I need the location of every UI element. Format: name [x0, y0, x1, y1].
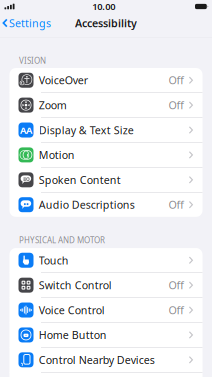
- staticText: Off: [168, 303, 183, 317]
- staticText: Audio Descriptions: [39, 198, 135, 212]
- staticText: Voice Control: [39, 303, 105, 317]
- staticText: Zoom: [39, 98, 67, 112]
- staticText: Off: [168, 278, 183, 292]
- staticText: Switch Control: [39, 278, 112, 292]
- button[interactable]: Touch: [9, 248, 202, 273]
- button[interactable]: Spoken Content: [9, 168, 202, 192]
- button[interactable]: Settings: [0, 13, 51, 33]
- staticText: Spoken Content: [39, 173, 121, 187]
- staticText: Touch: [39, 253, 69, 267]
- staticText: Accessibility: [75, 16, 137, 30]
- staticText: Control Nearby Devices: [39, 353, 155, 367]
- staticText: VISION: [19, 55, 46, 66]
- button[interactable]: Audio Descriptions: [9, 192, 202, 217]
- button[interactable]: Motion: [9, 143, 202, 168]
- button[interactable]: Zoom: [9, 93, 202, 118]
- staticText: Off: [168, 198, 183, 212]
- button[interactable]: Control Nearby Devices: [9, 348, 202, 372]
- staticText: Home Button: [39, 328, 107, 342]
- staticText: Settings: [9, 16, 51, 30]
- button[interactable]: Home Button: [9, 323, 202, 348]
- staticText: VoiceOver: [39, 73, 88, 87]
- button[interactable]: Apple TV Remote: [9, 372, 202, 377]
- staticText: Off: [168, 73, 183, 87]
- staticText: Display & Text Size: [39, 123, 134, 137]
- button[interactable]: AA: [9, 118, 202, 143]
- staticText: 10.00: [92, 0, 115, 13]
- button[interactable]: Switch Control: [9, 273, 202, 298]
- staticText: Off: [168, 98, 183, 112]
- button[interactable]: VoiceOver: [9, 68, 202, 93]
- staticText: PHYSICAL AND MOTOR: [19, 235, 105, 245]
- staticText: Motion: [39, 148, 75, 162]
- staticText: AA: [20, 124, 32, 136]
- button[interactable]: Voice Control: [9, 298, 202, 323]
